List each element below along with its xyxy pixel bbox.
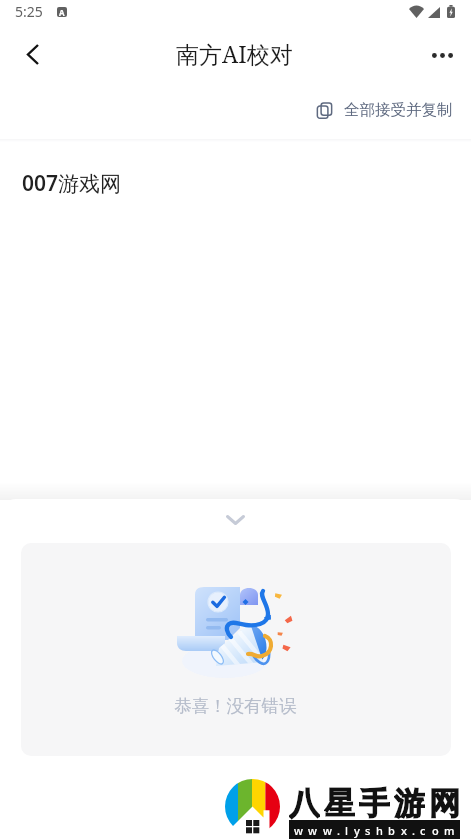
staticText: 网 xyxy=(429,784,460,820)
staticText: 007游戏网 xyxy=(22,169,122,198)
staticText: 恭喜！没有错误 xyxy=(174,695,297,717)
staticText: w xyxy=(308,823,317,838)
staticText: m xyxy=(444,823,455,838)
staticText: l xyxy=(345,823,348,838)
staticText: . xyxy=(412,823,415,838)
button[interactable]: Collapse panel xyxy=(0,509,471,531)
button[interactable]: Back xyxy=(10,31,56,77)
staticText: A xyxy=(59,7,65,17)
staticText: 手 xyxy=(359,784,390,820)
staticText: c xyxy=(420,823,426,838)
staticText: . xyxy=(337,823,340,838)
staticText: w xyxy=(294,823,303,838)
staticText: 游 xyxy=(394,784,425,820)
staticText: 全部接受并复制 xyxy=(344,100,453,120)
staticText: y xyxy=(354,823,360,838)
staticText: o xyxy=(432,823,439,838)
button[interactable]: More options xyxy=(418,31,466,79)
staticText: 南方AI校对 xyxy=(176,38,293,69)
staticText: w xyxy=(323,823,332,838)
staticText: x xyxy=(401,823,407,838)
staticText: b xyxy=(388,823,395,838)
button[interactable]: 全部接受并复制 xyxy=(310,92,459,128)
staticText: 5:25 xyxy=(15,2,43,21)
staticText: s xyxy=(365,823,371,838)
staticText: 星 xyxy=(324,784,355,820)
staticText: 八 xyxy=(289,784,320,820)
staticText: h xyxy=(376,823,383,838)
